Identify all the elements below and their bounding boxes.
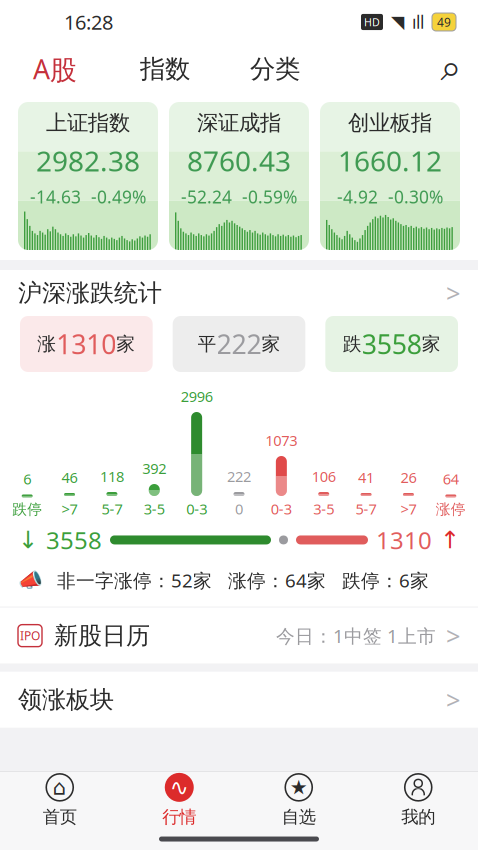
staticText: ⌂ bbox=[53, 775, 67, 799]
staticText: -14.63 bbox=[30, 185, 81, 208]
staticText: 16:28 bbox=[64, 9, 113, 35]
staticText: ∿ bbox=[170, 774, 189, 800]
button[interactable]: 跌 bbox=[325, 316, 458, 372]
staticText: > bbox=[446, 619, 460, 652]
staticText: 家 bbox=[422, 332, 441, 355]
staticText: 1660.12 bbox=[338, 142, 442, 179]
staticText: ıll bbox=[412, 10, 424, 33]
staticText: 行情 bbox=[162, 806, 196, 828]
staticText: 64 bbox=[443, 469, 459, 488]
staticText: 家 bbox=[116, 332, 135, 355]
staticText: 392 bbox=[142, 458, 166, 478]
staticText: -0.49% bbox=[91, 185, 146, 208]
staticText: 0 bbox=[235, 499, 243, 518]
staticText: 3-5 bbox=[313, 499, 334, 518]
staticText: 2996 bbox=[181, 386, 213, 406]
staticText: 创业板指 bbox=[348, 110, 432, 136]
staticText: 222 bbox=[227, 466, 251, 486]
staticText: 3558 bbox=[362, 326, 422, 362]
staticText: 1310 bbox=[56, 326, 116, 362]
staticText: 41 bbox=[358, 467, 374, 487]
staticText: 深证成指 bbox=[197, 110, 281, 136]
staticText: 5-7 bbox=[356, 499, 377, 518]
staticText: A股 bbox=[33, 51, 77, 87]
staticText: 0-3 bbox=[186, 499, 207, 518]
staticText: HD bbox=[364, 15, 380, 29]
staticText: 涨停 bbox=[436, 500, 466, 518]
staticText: >7 bbox=[61, 499, 77, 518]
staticText: ★ bbox=[290, 776, 308, 799]
staticText: 5-7 bbox=[101, 499, 122, 518]
staticText: 分类 bbox=[250, 53, 300, 84]
staticText: 6 bbox=[23, 469, 31, 488]
staticText: 平 bbox=[197, 332, 216, 355]
staticText: 0-3 bbox=[271, 499, 292, 518]
button[interactable]: 领涨板块 bbox=[0, 672, 478, 728]
staticText: 26 bbox=[400, 467, 416, 487]
staticText: 沪深涨跌统计 bbox=[18, 278, 162, 308]
staticText: 涨 bbox=[37, 332, 56, 355]
button[interactable]: 行情 bbox=[119, 772, 239, 828]
staticText: 106 bbox=[312, 466, 336, 486]
staticText: 跌停 bbox=[12, 500, 42, 518]
staticText: 📣 bbox=[18, 569, 43, 592]
staticText: 49 bbox=[437, 14, 451, 30]
staticText: IPO bbox=[20, 628, 40, 644]
button[interactable]: 我的 bbox=[358, 772, 478, 828]
staticText: 跌停：6家 bbox=[342, 568, 429, 593]
staticText: 3558 bbox=[46, 524, 102, 556]
staticText: -4.92 bbox=[337, 185, 378, 208]
button[interactable]: 上证指数 bbox=[18, 102, 158, 250]
staticText: 领涨板块 bbox=[18, 685, 114, 714]
staticText: 8760.43 bbox=[187, 142, 291, 179]
staticText: ⌕ bbox=[440, 51, 461, 87]
staticText: -0.59% bbox=[242, 185, 297, 208]
staticText: 46 bbox=[61, 467, 77, 487]
button[interactable]: 深证成指 bbox=[169, 102, 309, 250]
button[interactable]: 涨 bbox=[20, 316, 153, 372]
button[interactable]: A股 bbox=[0, 45, 110, 93]
staticText: 首页 bbox=[43, 806, 77, 828]
staticText: >7 bbox=[400, 499, 416, 518]
button[interactable]: 搜索 bbox=[424, 45, 478, 93]
staticText: 我的 bbox=[401, 806, 435, 828]
staticText: 跌 bbox=[343, 332, 362, 355]
staticText: 家 bbox=[261, 332, 280, 355]
staticText: 上证指数 bbox=[46, 110, 130, 136]
staticText: 指数 bbox=[140, 53, 190, 84]
staticText: 1073 bbox=[265, 430, 297, 450]
staticText: -0.30% bbox=[388, 185, 443, 208]
button[interactable]: IPO bbox=[0, 608, 478, 664]
button[interactable]: 指数 bbox=[110, 45, 220, 93]
staticText: ↓ bbox=[18, 526, 38, 553]
button[interactable]: 分类 bbox=[220, 45, 330, 93]
staticText: > bbox=[446, 276, 460, 310]
button[interactable]: 沪深涨跌统计 bbox=[0, 270, 478, 316]
staticText: ◥ bbox=[391, 12, 404, 32]
staticText: -52.24 bbox=[181, 185, 232, 208]
staticText: ★ bbox=[290, 776, 308, 799]
staticText: 非一字涨停：52家 bbox=[57, 568, 212, 593]
button[interactable]: 自选 bbox=[239, 772, 358, 828]
staticText: ↑ bbox=[440, 526, 460, 553]
staticText: 118 bbox=[100, 466, 124, 486]
staticText: 222 bbox=[216, 326, 261, 362]
staticText: 今日：1中签 1上市 bbox=[276, 623, 436, 648]
staticText: 自选 bbox=[282, 806, 316, 828]
button[interactable]: 创业板指 bbox=[320, 102, 460, 250]
button[interactable]: 首页 bbox=[0, 772, 119, 828]
staticText: 新股日历 bbox=[54, 621, 150, 650]
staticText: 1310 bbox=[376, 524, 432, 556]
staticText: 2982.38 bbox=[36, 142, 140, 179]
staticText: 涨停：64家 bbox=[228, 568, 326, 593]
staticText: 3-5 bbox=[144, 499, 165, 518]
staticText: > bbox=[446, 683, 460, 716]
button[interactable]: 平 bbox=[173, 316, 305, 372]
